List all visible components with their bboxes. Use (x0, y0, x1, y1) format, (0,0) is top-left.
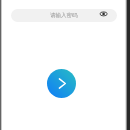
button[interactable] (47, 69, 76, 98)
button[interactable]: 请输入密码 (11, 9, 117, 22)
staticText: 请输入密码 (50, 12, 78, 19)
button[interactable] (99, 10, 109, 18)
